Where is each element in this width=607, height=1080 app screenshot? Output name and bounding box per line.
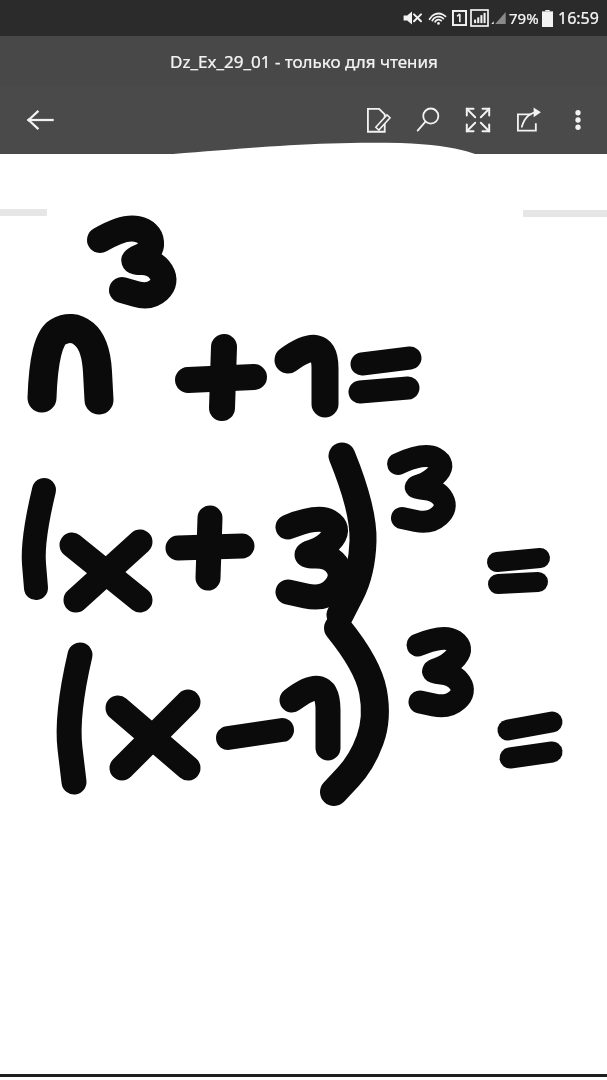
button[interactable]: Share bbox=[503, 92, 553, 148]
button[interactable]: More options bbox=[553, 92, 603, 148]
staticText: 16:59 bbox=[558, 7, 599, 29]
staticText: Dz_Ex_29_01 - только для чтения bbox=[170, 50, 438, 73]
button[interactable]: Back bbox=[14, 94, 66, 146]
staticText: 79% bbox=[509, 8, 539, 28]
button[interactable]: Search bbox=[403, 92, 453, 148]
button[interactable]: Edit bbox=[353, 92, 403, 148]
button[interactable]: Fullscreen bbox=[453, 92, 503, 148]
